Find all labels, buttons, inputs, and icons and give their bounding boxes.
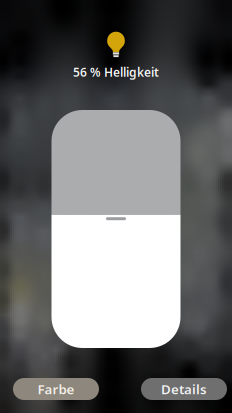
staticText: Details xyxy=(161,380,207,398)
button[interactable]: Farbe xyxy=(13,378,99,400)
staticText: Farbe xyxy=(37,380,74,398)
staticText: 56 % Helligkeit xyxy=(73,64,159,80)
button[interactable]: Details xyxy=(141,378,227,400)
